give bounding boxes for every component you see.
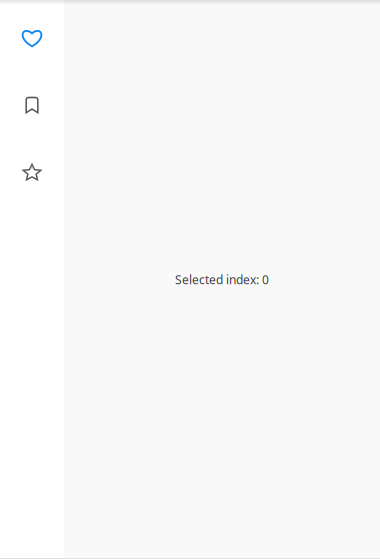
button[interactable]: Starred	[0, 138, 64, 205]
button[interactable]: Favorites	[0, 4, 64, 71]
staticText: Selected index: 0	[175, 271, 269, 287]
button[interactable]: Bookmarks	[0, 71, 64, 138]
